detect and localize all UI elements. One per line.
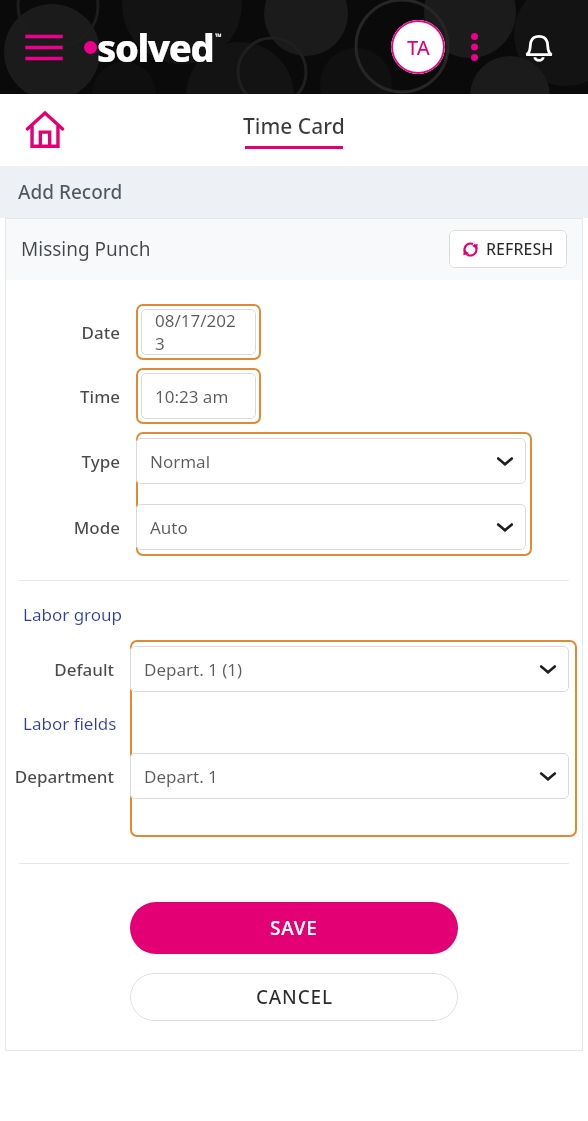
button[interactable]: TA — [391, 20, 445, 74]
button[interactable]: Menu — [14, 17, 74, 77]
staticText: Missing Punch — [21, 236, 151, 262]
staticText: Labor fields — [23, 712, 117, 735]
staticText: Normal — [150, 450, 211, 473]
staticText: Time — [5, 385, 120, 408]
staticText: CANCEL — [256, 984, 333, 1010]
button[interactable]: More options — [452, 25, 496, 69]
staticText: Add Record — [18, 179, 123, 205]
staticText: Mode — [5, 516, 120, 539]
button[interactable]: SAVE — [130, 902, 458, 954]
staticText: Time Card — [243, 112, 345, 141]
staticText: Depart. 1 — [144, 765, 218, 788]
button[interactable]: CANCEL — [130, 973, 458, 1021]
button[interactable]: Normal — [136, 438, 526, 484]
button[interactable]: Depart. 1 — [130, 753, 569, 799]
staticText: 10:23 am — [155, 385, 229, 408]
staticText: solved — [97, 21, 214, 73]
button[interactable]: Auto — [136, 504, 526, 550]
staticText: 08/17/2023 — [155, 309, 244, 355]
staticText: Type — [5, 450, 120, 473]
staticText: Date — [5, 321, 120, 344]
button[interactable]: REFRESH — [449, 230, 567, 268]
button[interactable]: 08/17/2023 — [141, 309, 256, 355]
staticText: Default — [5, 658, 114, 681]
staticText: Department — [5, 765, 114, 788]
staticText: Auto — [150, 516, 188, 539]
button[interactable]: 10:23 am — [141, 373, 256, 419]
staticText: SAVE — [270, 915, 318, 941]
staticText: Labor group — [23, 603, 123, 626]
staticText: TA — [407, 34, 430, 61]
button[interactable]: Home — [16, 101, 74, 159]
staticText: REFRESH — [486, 238, 554, 260]
staticText: ™ — [215, 30, 222, 42]
button[interactable]: Notifications — [514, 22, 564, 72]
staticText: Depart. 1 (1) — [144, 658, 243, 681]
button[interactable]: Depart. 1 (1) — [130, 646, 569, 692]
button[interactable]: Time Card — [243, 112, 345, 149]
